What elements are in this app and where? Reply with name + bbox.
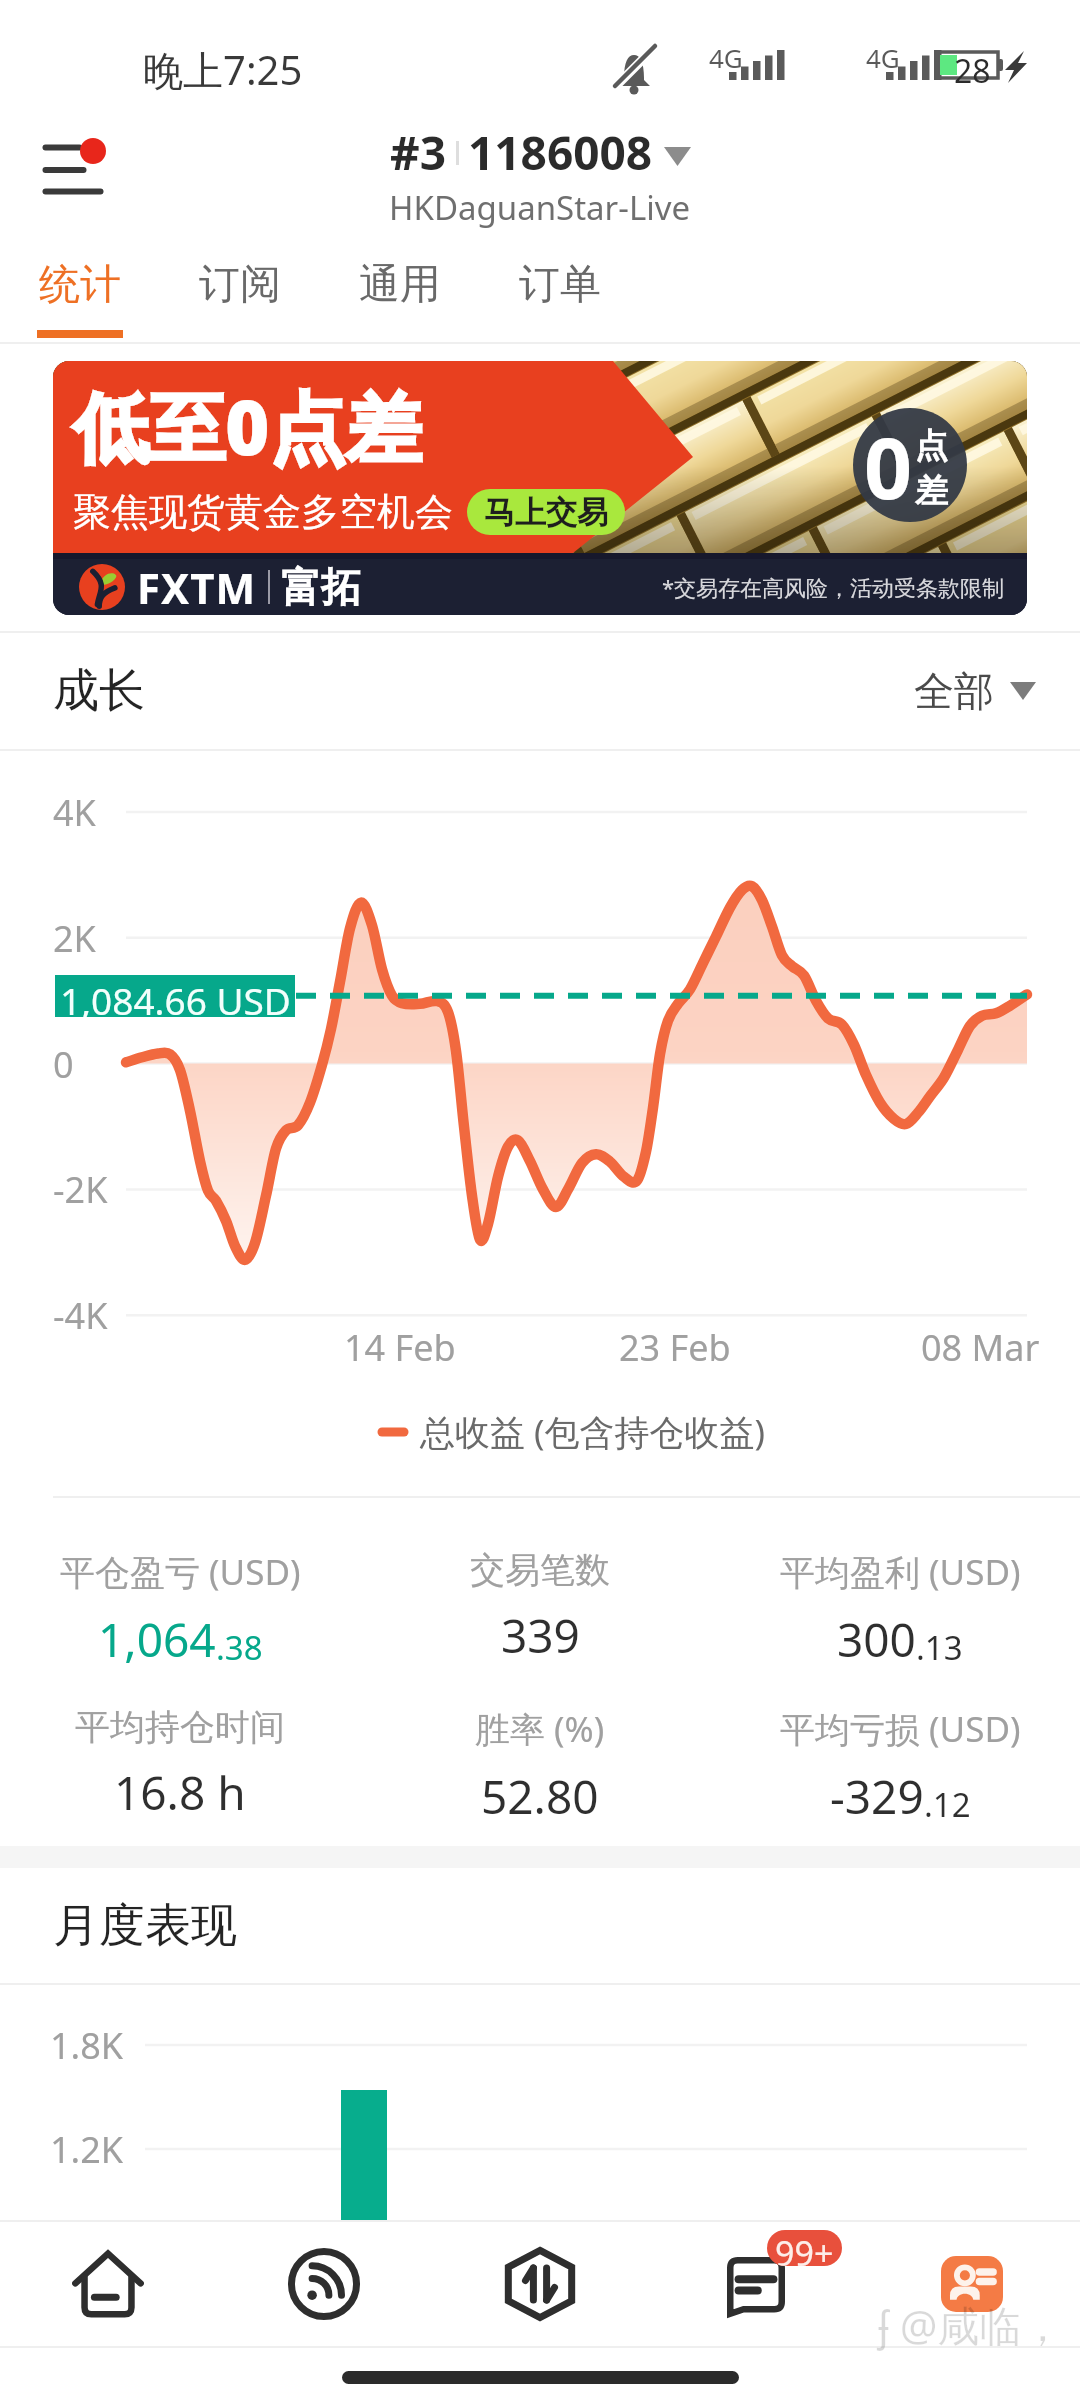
staticText: 平仓盈亏 (USD) xyxy=(60,1548,301,1596)
button[interactable]: #3 xyxy=(377,117,703,234)
staticText: 月度表现 xyxy=(53,1897,237,1955)
staticText: 08 Mar xyxy=(921,1323,1040,1372)
staticText: -329 xyxy=(830,1765,924,1828)
staticText: 聚焦现货黄金多空机会 xyxy=(73,488,453,536)
button[interactable]: Messages xyxy=(648,2222,864,2346)
button[interactable]: 成长 xyxy=(53,633,1036,749)
button[interactable]: 马上交易 xyxy=(467,489,625,535)
staticText: 统计 xyxy=(39,259,121,311)
staticText: #3 xyxy=(390,121,447,184)
button[interactable]: Home xyxy=(0,2222,216,2346)
staticText: 1,064 xyxy=(98,1608,216,1671)
staticText: ʄ @咸临， xyxy=(878,2296,1064,2353)
staticText: -4K xyxy=(53,1291,108,1340)
staticText: 平均持仓时间 xyxy=(75,1705,285,1749)
staticText: 300 xyxy=(837,1608,916,1671)
staticText: .13 xyxy=(916,1625,963,1670)
staticText: 全部 xyxy=(914,666,994,716)
button[interactable]: 通用 xyxy=(320,240,480,342)
staticText: .12 xyxy=(924,1782,971,1827)
staticText: 交易笔数 xyxy=(470,1548,610,1592)
staticText: 23 Feb xyxy=(619,1323,731,1372)
staticText: FXTM xyxy=(137,559,257,615)
staticText: 富拓 xyxy=(281,562,361,612)
staticText: *交易存在高风险，活动受条款限制 xyxy=(662,572,1005,602)
button[interactable]: 低至0点差 xyxy=(53,361,1027,615)
staticText: .38 xyxy=(216,1625,263,1670)
staticText: -2K xyxy=(53,1165,108,1214)
staticText: 晚上7:25 xyxy=(143,42,303,97)
staticText: 1,084.66 USD xyxy=(60,975,291,1017)
staticText: 订阅 xyxy=(199,259,281,311)
button[interactable]: Profile xyxy=(864,2222,1080,2346)
staticText: 成长 xyxy=(53,662,145,720)
staticText: 52.80 xyxy=(481,1765,599,1828)
staticText: 0 xyxy=(864,409,913,523)
staticText: 14 Feb xyxy=(344,1323,456,1372)
staticText: 16.8 h xyxy=(114,1761,246,1824)
staticText: 0 xyxy=(53,1040,74,1089)
staticText: 2K xyxy=(53,914,96,963)
staticText: 1.8K xyxy=(50,2021,124,2070)
staticText: 马上交易 xyxy=(484,493,608,532)
staticText: 339 xyxy=(501,1604,580,1667)
staticText: 总收益 (包含持仓收益) xyxy=(420,1408,766,1456)
button[interactable]: 订单 xyxy=(480,240,640,342)
staticText: HKDaguanStar-Live xyxy=(389,185,691,230)
staticText: 28 xyxy=(954,49,991,93)
staticText: 99+ xyxy=(775,2230,834,2266)
staticText: 1186008 xyxy=(468,121,653,184)
button[interactable]: 订阅 xyxy=(160,240,320,342)
staticText: 4G xyxy=(709,40,743,75)
staticText: 差 xyxy=(915,470,948,512)
staticText: 平均盈利 (USD) xyxy=(780,1548,1021,1596)
button[interactable]: 统计 xyxy=(0,240,160,342)
staticText: 订单 xyxy=(519,259,601,311)
button[interactable]: Menu xyxy=(10,112,130,240)
button[interactable]: Trade xyxy=(432,2222,648,2346)
staticText: 4K xyxy=(53,788,96,837)
staticText: 1.2K xyxy=(50,2125,124,2174)
button[interactable]: Signals xyxy=(216,2222,432,2346)
staticText: 通用 xyxy=(359,259,441,311)
staticText: 胜率 (%) xyxy=(475,1705,605,1753)
staticText: 4G xyxy=(866,40,900,75)
staticText: 点 xyxy=(915,425,948,467)
staticText: 低至0点差 xyxy=(73,374,422,478)
staticText: 平均亏损 (USD) xyxy=(780,1705,1021,1753)
